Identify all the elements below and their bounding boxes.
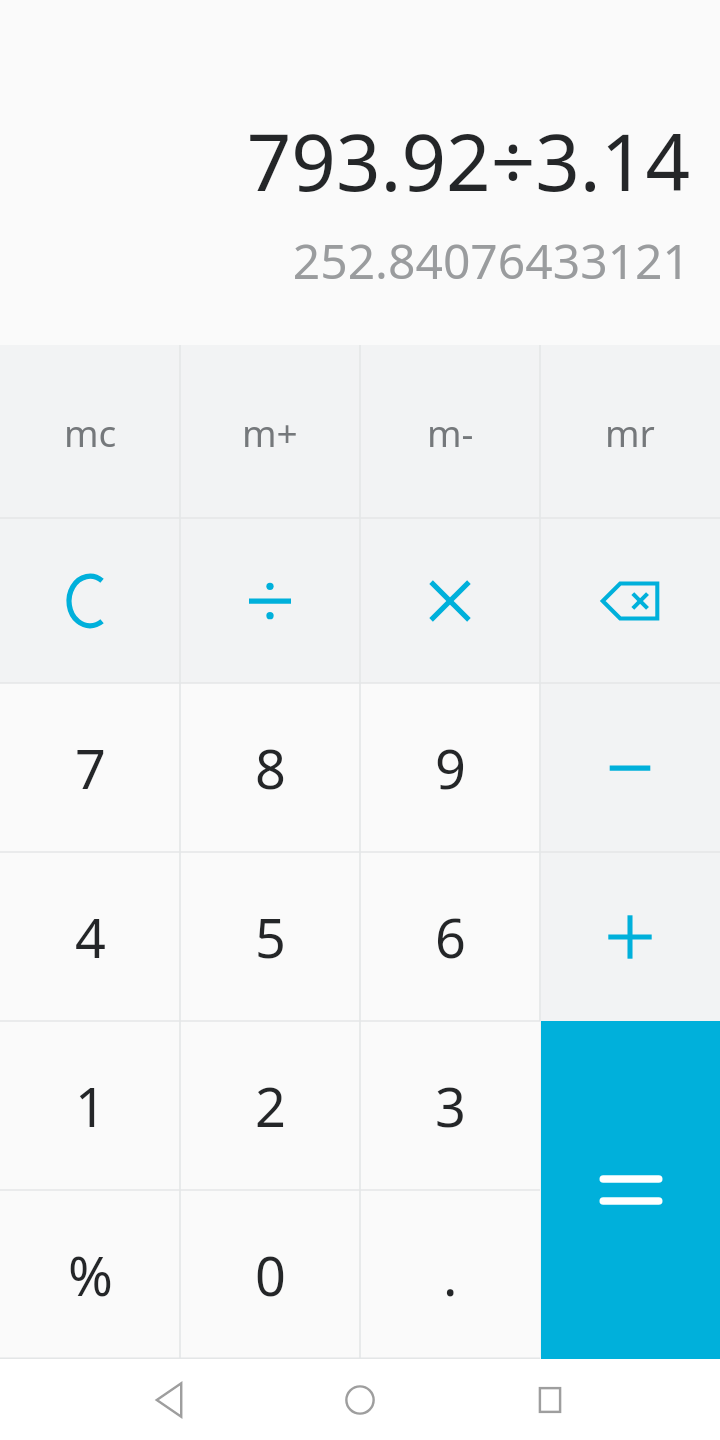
staticText: mc: [64, 407, 117, 457]
button[interactable]: 1: [0, 1021, 180, 1190]
button[interactable]: Backspace: [540, 518, 720, 683]
button[interactable]: Multiply: [360, 518, 540, 683]
button[interactable]: Home: [320, 1360, 400, 1440]
button[interactable]: 8: [180, 683, 360, 852]
staticText: 8: [255, 731, 286, 805]
staticText: m-: [427, 407, 474, 457]
button[interactable]: mr: [540, 345, 720, 518]
button[interactable]: mc: [0, 345, 180, 518]
button[interactable]: Clear: [0, 518, 180, 683]
staticText: 2: [255, 1069, 286, 1143]
staticText: 7: [75, 731, 106, 805]
staticText: .: [443, 1238, 458, 1312]
button[interactable]: m-: [360, 345, 540, 518]
staticText: 1: [75, 1069, 106, 1143]
staticText: 6: [435, 900, 466, 974]
button[interactable]: m+: [180, 345, 360, 518]
button[interactable]: Back: [130, 1360, 210, 1440]
button[interactable]: .: [360, 1190, 540, 1359]
staticText: m+: [242, 407, 298, 457]
button[interactable]: Plus: [540, 852, 720, 1021]
staticText: 4: [75, 900, 106, 974]
button[interactable]: 4: [0, 852, 180, 1021]
button[interactable]: Equals: [541, 1021, 720, 1359]
button[interactable]: 5: [180, 852, 360, 1021]
staticText: 0: [255, 1238, 286, 1312]
button[interactable]: Minus: [540, 683, 720, 852]
button[interactable]: 3: [360, 1021, 540, 1190]
button[interactable]: 6: [360, 852, 540, 1021]
button[interactable]: 2: [180, 1021, 360, 1190]
staticText: 5: [255, 900, 286, 974]
staticText: 9: [435, 731, 466, 805]
button[interactable]: Recents: [510, 1360, 590, 1440]
button[interactable]: 0: [180, 1190, 360, 1359]
button[interactable]: Divide: [180, 518, 360, 683]
button[interactable]: 7: [0, 683, 180, 852]
staticText: 793.92÷3.14: [246, 108, 690, 214]
staticText: mr: [605, 407, 655, 457]
button[interactable]: 9: [360, 683, 540, 852]
staticText: %: [68, 1238, 113, 1312]
staticText: 252.84076433121: [292, 228, 690, 293]
staticText: 3: [435, 1069, 466, 1143]
button[interactable]: %: [0, 1190, 180, 1359]
